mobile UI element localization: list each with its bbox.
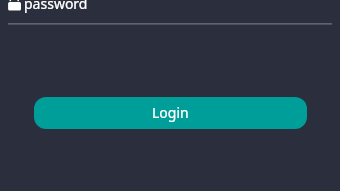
button[interactable]: Login — [34, 97, 307, 129]
button[interactable]: Password — [0, 0, 340, 26]
staticText: Login — [152, 103, 189, 122]
staticText: password — [24, 0, 88, 13]
